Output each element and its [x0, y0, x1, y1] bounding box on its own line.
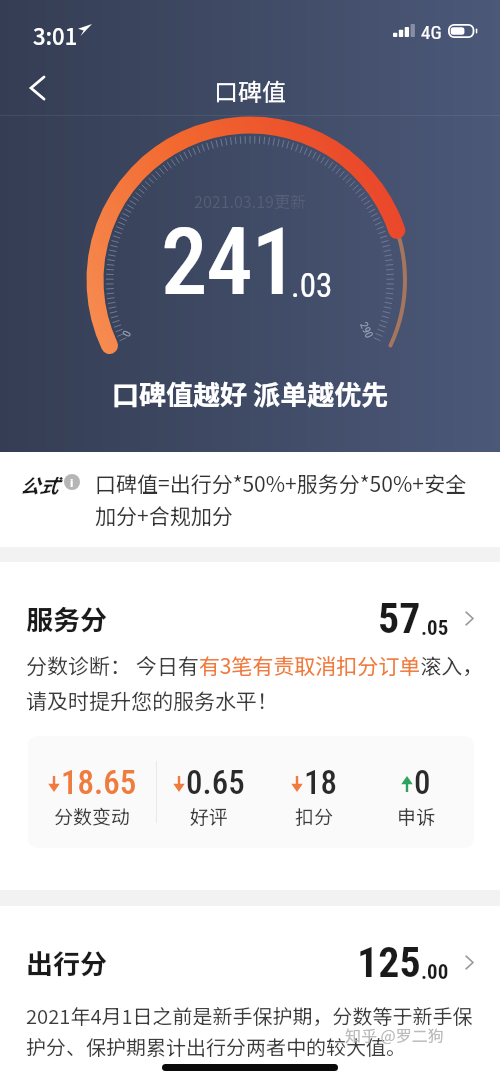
- staticText: 公式: [20, 471, 59, 499]
- staticText: 2021年4月1日之前是新手保护期，分数等于新手保 护分、保护期累计出行分两者中…: [26, 1001, 473, 1061]
- staticText: 241: [161, 208, 297, 317]
- staticText: 3:01: [33, 19, 78, 51]
- staticText: 分数诊断： 今日有有3笔有责取消扣分订单滚入， 请及时提升您的服务水平！: [26, 650, 484, 715]
- staticText: .00: [421, 960, 449, 985]
- staticText: 125: [357, 938, 421, 987]
- staticText: 18.65: [61, 763, 137, 802]
- staticText: 扣分: [295, 802, 334, 830]
- button[interactable]: 服务分: [0, 593, 500, 643]
- button[interactable]: Info: [64, 474, 80, 490]
- staticText: 分数变动: [54, 802, 131, 830]
- staticText: 0.65: [186, 763, 245, 802]
- staticText: .05: [421, 616, 449, 641]
- staticText: 4G: [421, 21, 442, 43]
- staticText: 口碑值: [214, 73, 286, 108]
- staticText: 0: [120, 328, 134, 339]
- staticText: 290: [357, 320, 376, 341]
- staticText: .03: [291, 266, 333, 305]
- staticText: 57: [378, 594, 421, 643]
- staticText: 口碑值越好 派单越优先: [112, 374, 389, 413]
- staticText: 口碑值=出行分*50%+服务分*50%+安全 加分+合规加分: [95, 468, 466, 530]
- staticText: i: [70, 474, 74, 490]
- button[interactable]: Back: [13, 64, 61, 112]
- staticText: 出行分: [26, 943, 107, 982]
- staticText: 18: [304, 763, 337, 802]
- staticText: 2021.03.19更新: [194, 189, 306, 212]
- staticText: 好评: [190, 802, 229, 830]
- button[interactable]: 出行分: [0, 937, 500, 987]
- staticText: 服务分: [26, 599, 107, 638]
- staticText: 申诉: [397, 802, 436, 830]
- staticText: 0: [414, 763, 431, 802]
- staticText: 知乎 @罗二狗: [345, 1023, 444, 1046]
